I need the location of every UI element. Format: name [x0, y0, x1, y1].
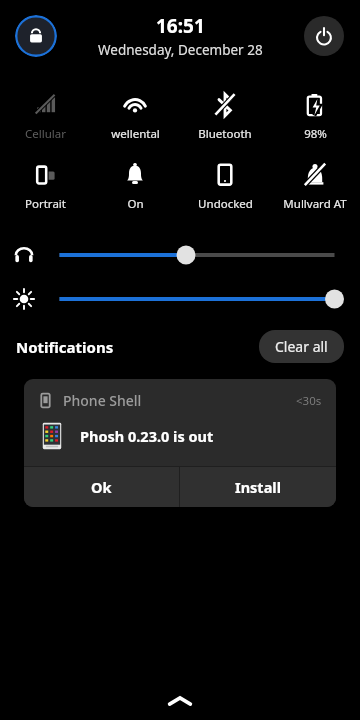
button[interactable]: Phosh 0.23.0 is out: [24, 418, 336, 466]
button[interactable]: Power: [304, 16, 344, 56]
staticText: Ok: [91, 477, 112, 497]
button[interactable]: Undocked: [180, 156, 270, 216]
button[interactable]: [0, 240, 360, 270]
staticText: Undocked: [198, 196, 253, 212]
staticText: Clear all: [275, 337, 328, 356]
button[interactable]: [0, 284, 360, 314]
staticText: Mullvard AT: [283, 196, 347, 212]
staticText: Bluetooth: [198, 126, 252, 142]
button[interactable]: 16:51: [98, 13, 263, 59]
button[interactable]: 98%: [270, 86, 360, 146]
button[interactable]: Phone Shell: [24, 379, 336, 418]
staticText: 16:51: [156, 13, 205, 39]
button[interactable]: Clear all: [259, 330, 344, 363]
button[interactable]: Cellular: [0, 86, 90, 146]
button[interactable]: Ok: [24, 467, 179, 507]
staticText: Wednesday, December 28: [98, 41, 263, 59]
button[interactable]: Mullvard AT: [270, 156, 360, 216]
button[interactable]: Close panel: [158, 688, 202, 714]
staticText: 98%: [304, 126, 327, 142]
staticText: <30s: [296, 393, 322, 409]
button[interactable]: Install: [180, 467, 336, 507]
button[interactable]: wellental: [90, 86, 180, 146]
button[interactable]: Lock screen: [15, 15, 57, 57]
button[interactable]: On: [90, 156, 180, 216]
button[interactable]: Portrait: [0, 156, 90, 216]
button[interactable]: Bluetooth: [180, 86, 270, 146]
staticText: Install: [235, 477, 281, 497]
staticText: Phosh 0.23.0 is out: [80, 426, 214, 446]
staticText: On: [127, 196, 144, 212]
staticText: Cellular: [25, 126, 66, 142]
staticText: Phone Shell: [63, 391, 142, 410]
staticText: Portrait: [25, 196, 66, 212]
staticText: wellental: [111, 126, 160, 142]
staticText: Notifications: [16, 337, 114, 357]
